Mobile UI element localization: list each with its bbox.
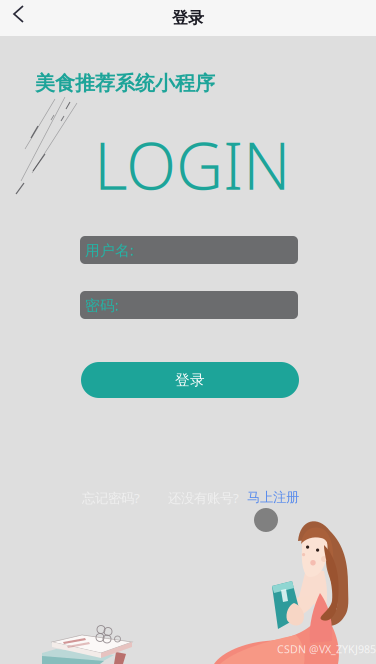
staticText: CSDN @VX_ZYKJ985 (277, 642, 376, 656)
staticText: 登录 (175, 371, 205, 389)
button[interactable]: 登录 (81, 362, 299, 398)
staticText: 马上注册 (247, 489, 299, 505)
staticText: LOGIN (94, 121, 291, 208)
staticText: 还没有账号? (168, 489, 239, 507)
staticText: 密码: (85, 295, 119, 315)
staticText: 忘记密码? (82, 489, 140, 507)
button[interactable]: 还没有账号? (168, 489, 239, 507)
staticText: 用户名: (85, 240, 134, 260)
staticText: 登录 (172, 8, 204, 28)
staticText: 美食推荐系统小程序 (35, 71, 215, 96)
button[interactable]: Back (6, 3, 32, 33)
button[interactable]: 忘记密码? (82, 489, 140, 507)
button[interactable]: 马上注册 (247, 489, 299, 505)
